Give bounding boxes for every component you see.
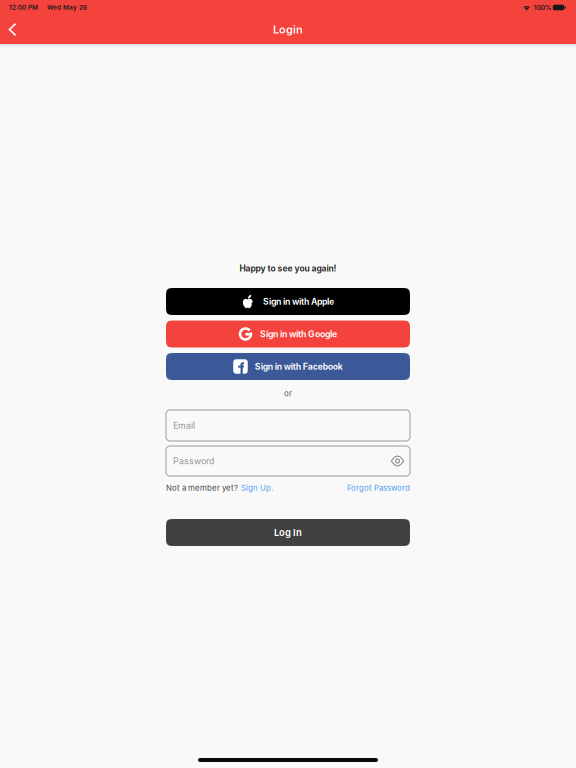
- button[interactable]: Forgot Password: [347, 483, 410, 493]
- staticText: 12:00 PM: [9, 4, 38, 11]
- button[interactable]: Sign in with Google: [166, 320, 410, 347]
- staticText: Password: [173, 456, 214, 466]
- button[interactable]: Sign in with Facebook: [166, 353, 410, 380]
- staticText: Login: [273, 23, 303, 36]
- staticText: Sign in with Google: [260, 329, 337, 339]
- staticText: Sign in with Facebook: [255, 361, 343, 372]
- button[interactable]: Show password: [391, 456, 404, 466]
- staticText: Sign in with Apple: [263, 296, 334, 307]
- button[interactable]: Sign Up.: [238, 483, 273, 493]
- staticText: Email: [173, 420, 195, 431]
- button[interactable]: Log In: [166, 519, 410, 546]
- staticText: or: [284, 389, 292, 398]
- button[interactable]: Email: [166, 410, 410, 441]
- staticText: Log In: [274, 527, 302, 538]
- staticText: Sign Up.: [241, 483, 273, 493]
- button[interactable]: Sign in with Apple: [166, 288, 410, 315]
- staticText: Not a member yet?: [166, 483, 238, 493]
- button[interactable]: Back: [0, 16, 26, 42]
- staticText: Wed May 26: [47, 4, 87, 11]
- staticText: 100%: [534, 3, 552, 12]
- staticText: Happy to see you again!: [239, 263, 336, 274]
- staticText: Forgot Password: [347, 483, 410, 493]
- button[interactable]: Password: [166, 446, 410, 476]
